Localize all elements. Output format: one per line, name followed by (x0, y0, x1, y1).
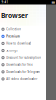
staticText: Settings (6, 49, 17, 52)
button[interactable]: Discount for subscription (0, 54, 46, 61)
button[interactable]: Collection (0, 26, 46, 33)
button[interactable]: Premium (0, 33, 46, 40)
staticText: Collection (6, 27, 21, 31)
staticText: How to download (6, 42, 31, 45)
staticText: Downloads for Telegram (6, 70, 39, 74)
button[interactable]: Settings (0, 47, 46, 54)
staticText: ▮▮▮ (51, 1, 54, 4)
staticText: Browser (1, 11, 28, 20)
button[interactable]: How to download (0, 40, 46, 47)
staticText: All video downloader (6, 77, 37, 81)
button[interactable]: All video downloader (0, 75, 46, 82)
staticText: Premium (6, 35, 20, 38)
staticText: Downloads for free (6, 63, 33, 66)
staticText: Discount for subscription (6, 56, 41, 59)
button[interactable]: Downloads for Telegram (0, 68, 46, 75)
button[interactable]: Downloads for free (0, 61, 46, 68)
staticText: 9:41 (2, 0, 9, 4)
